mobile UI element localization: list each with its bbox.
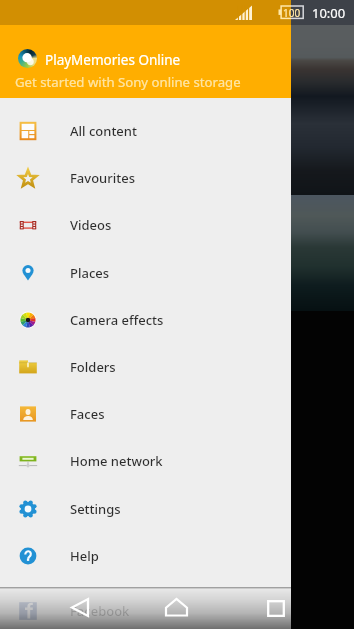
button[interactable]: Settings bbox=[0, 485, 291, 532]
staticText: Places bbox=[70, 264, 110, 282]
staticText: 100 bbox=[283, 6, 301, 20]
button[interactable]: PlayMemories Online bbox=[0, 25, 291, 98]
button[interactable]: Home network bbox=[0, 437, 291, 484]
button[interactable]: All content bbox=[0, 107, 291, 154]
staticText: Folders bbox=[70, 358, 116, 376]
button[interactable]: Favourites bbox=[0, 154, 291, 201]
staticText: Faces bbox=[70, 405, 105, 423]
staticText: 10:00 bbox=[312, 4, 346, 22]
staticText: All content bbox=[70, 122, 137, 140]
button[interactable]: Folders bbox=[0, 343, 291, 390]
button[interactable]: Facebook bbox=[0, 587, 291, 629]
staticText: PlayMemories Online bbox=[45, 51, 181, 69]
button[interactable]: Videos bbox=[0, 201, 291, 248]
staticText: Videos bbox=[70, 216, 112, 234]
button[interactable]: Places bbox=[0, 249, 291, 296]
staticText: Help bbox=[70, 547, 99, 565]
staticText: Home network bbox=[70, 452, 163, 470]
button[interactable]: Faces bbox=[0, 390, 291, 437]
button[interactable]: Home bbox=[156, 587, 197, 629]
staticText: Settings bbox=[70, 500, 121, 518]
staticText: Get started with Sony online storage bbox=[15, 73, 241, 91]
staticText: Camera effects bbox=[70, 311, 164, 329]
staticText: Favourites bbox=[70, 169, 136, 187]
button[interactable]: Help bbox=[0, 532, 291, 579]
button[interactable]: Recents bbox=[255, 587, 296, 629]
button[interactable]: Camera effects bbox=[0, 296, 291, 343]
staticText: Facebook bbox=[70, 602, 130, 620]
button[interactable]: Back bbox=[58, 587, 99, 629]
